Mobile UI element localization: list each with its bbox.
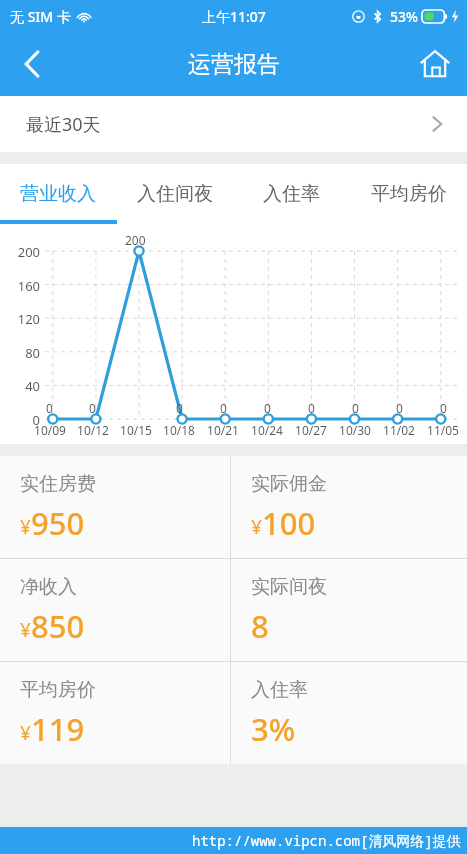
staticText: 平均房价 [371, 182, 447, 206]
staticText: 0 [89, 400, 96, 416]
button[interactable]: 营业收入 [0, 164, 116, 224]
staticText: 0 [220, 400, 227, 416]
button[interactable]: 实际间夜 [231, 559, 467, 661]
staticText: 0 [308, 400, 315, 416]
staticText: 11/02 [383, 422, 415, 438]
button[interactable]: 平均房价 [0, 662, 230, 764]
button[interactable]: 入住率 [231, 662, 467, 764]
staticText: 3% [251, 708, 296, 750]
staticText: 无 SIM 卡 [10, 7, 71, 26]
staticText: 入住率 [251, 678, 308, 702]
staticText: 净收入 [20, 575, 77, 599]
staticText: 160 [17, 277, 40, 295]
button[interactable]: 净收入 [0, 559, 230, 661]
staticText: 0 [396, 400, 403, 416]
staticText: 100 [262, 502, 316, 544]
staticText: 入住率 [263, 182, 320, 206]
button[interactable]: 入住率 [233, 164, 350, 224]
staticText: 0 [32, 411, 40, 429]
staticText: 200 [17, 243, 40, 261]
staticText: 10/24 [251, 422, 283, 438]
staticText: 40 [25, 377, 40, 395]
staticText: 0 [264, 400, 271, 416]
staticText: 0 [46, 400, 53, 416]
button[interactable]: 实住房费 [0, 456, 230, 558]
staticText: 运营报告 [188, 50, 280, 79]
staticText: 实际间夜 [251, 575, 327, 599]
staticText: 营业收入 [20, 182, 96, 206]
button[interactable]: 平均房价 [350, 164, 467, 224]
staticText: 平均房价 [20, 678, 96, 702]
button[interactable]: 入住间夜 [116, 164, 233, 224]
staticText: 850 [31, 605, 85, 647]
staticText: 0 [352, 400, 359, 416]
staticText: 10/12 [77, 422, 109, 438]
staticText: 80 [25, 344, 40, 362]
staticText: 实住房费 [20, 472, 96, 496]
staticText: 11/05 [427, 422, 459, 438]
staticText: ¥ [251, 514, 262, 540]
staticText: 入住间夜 [137, 182, 213, 206]
button[interactable]: 最近30天 [0, 96, 467, 152]
staticText: 0 [440, 400, 447, 416]
staticText: 10/15 [120, 422, 152, 438]
button[interactable]: Back [0, 32, 64, 96]
staticText: 950 [31, 502, 85, 544]
staticText: http://www.vipcn.com[清风网络]提供 [192, 831, 461, 850]
staticText: 8 [251, 605, 269, 647]
staticText: ¥ [20, 720, 31, 746]
staticText: 10/09 [34, 422, 66, 438]
staticText: 53% [390, 7, 418, 26]
staticText: 200 [125, 232, 146, 248]
staticText: 上午11:07 [202, 7, 266, 26]
button[interactable]: Home [403, 32, 467, 96]
staticText: 10/30 [339, 422, 371, 438]
button[interactable]: 实际佣金 [231, 456, 467, 558]
staticText: 10/27 [295, 422, 327, 438]
staticText: 0 [176, 400, 183, 416]
staticText: 10/21 [207, 422, 239, 438]
staticText: 120 [17, 310, 40, 328]
staticText: 最近30天 [26, 112, 101, 137]
staticText: 119 [31, 708, 85, 750]
staticText: ¥ [20, 617, 31, 643]
staticText: 10/18 [163, 422, 195, 438]
staticText: ¥ [20, 514, 31, 540]
staticText: 实际佣金 [251, 472, 327, 496]
